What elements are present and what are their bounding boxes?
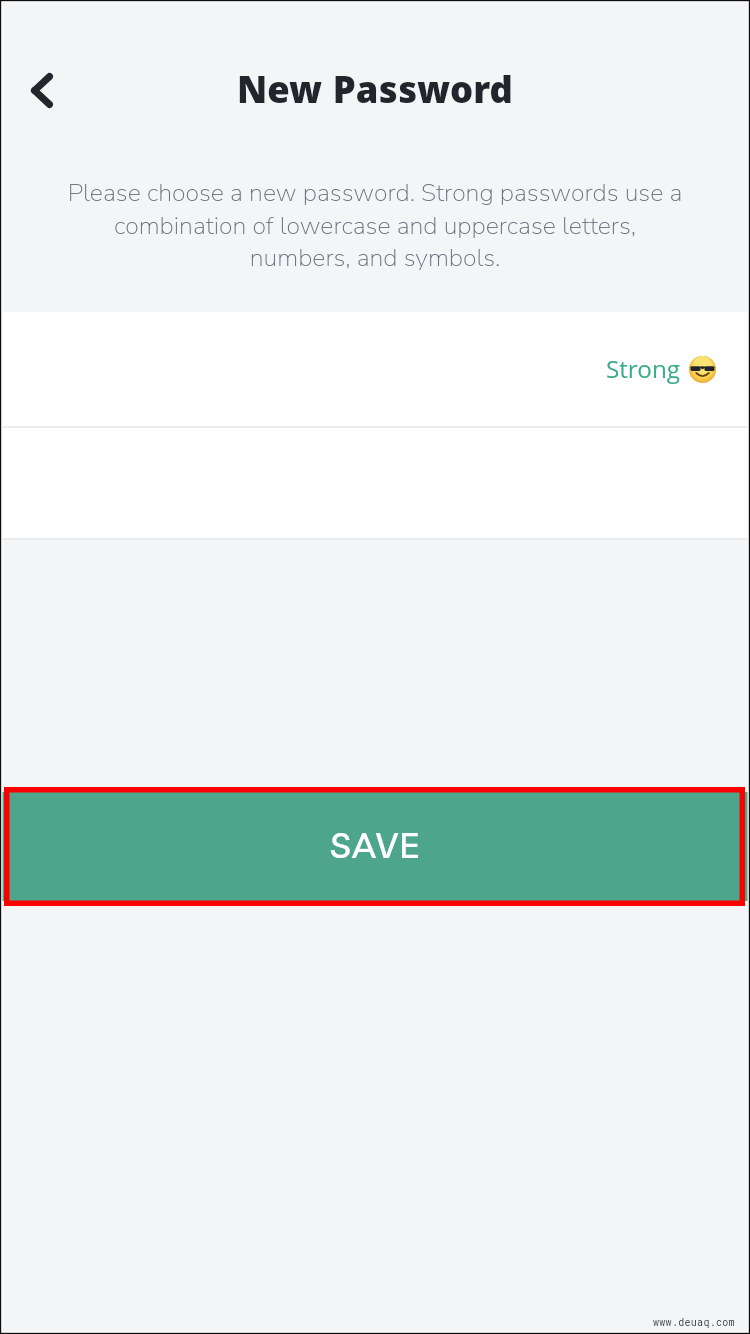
staticText: SAVE bbox=[330, 822, 421, 867]
button[interactable] bbox=[0, 428, 750, 538]
staticText: New Password bbox=[0, 64, 750, 127]
staticText: Please choose a new password. Strong pas… bbox=[62, 176, 688, 275]
button[interactable]: SAVE bbox=[0, 792, 750, 901]
staticText: Strong bbox=[606, 352, 681, 394]
button[interactable]: Back bbox=[11, 59, 73, 121]
button[interactable]: Strong bbox=[0, 312, 750, 426]
staticText: www.deuaq.com bbox=[653, 1316, 735, 1329]
